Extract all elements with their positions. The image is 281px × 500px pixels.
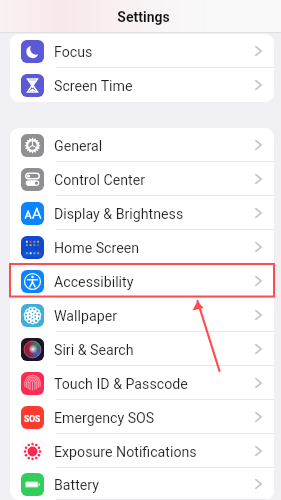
button[interactable]: Focus [10, 34, 274, 68]
button[interactable]: Accessibility [10, 264, 274, 298]
button[interactable]: Control Center [10, 162, 274, 196]
button[interactable]: General [10, 128, 274, 162]
staticText: Focus [54, 44, 93, 61]
staticText: Battery [54, 477, 100, 494]
button[interactable]: Touch ID & Passcode [10, 366, 274, 400]
button[interactable]: Screen Time [10, 68, 274, 102]
button[interactable]: Display & Brightness [10, 196, 274, 230]
staticText: Siri & Search [54, 342, 134, 359]
button[interactable]: Battery [10, 468, 274, 500]
button[interactable]: SOS [10, 400, 274, 434]
staticText: General [54, 138, 103, 155]
button[interactable]: Wallpaper [10, 298, 274, 332]
staticText: Home Screen [54, 240, 140, 257]
staticText: Exposure Notifications [54, 444, 197, 461]
staticText: Accessibility [54, 274, 134, 291]
staticText: SOS [24, 414, 41, 424]
staticText: Touch ID & Passcode [54, 376, 188, 393]
staticText: Display & Brightness [54, 206, 184, 223]
staticText: Wallpaper [54, 308, 117, 325]
staticText: Settings [117, 9, 170, 25]
button[interactable]: Home Screen [10, 230, 274, 264]
button[interactable]: Exposure Notifications [10, 434, 274, 468]
button[interactable]: Siri & Search [10, 332, 274, 366]
staticText: Screen Time [54, 78, 133, 95]
staticText: Emergency SOS [54, 410, 155, 427]
staticText: Control Center [54, 172, 146, 189]
